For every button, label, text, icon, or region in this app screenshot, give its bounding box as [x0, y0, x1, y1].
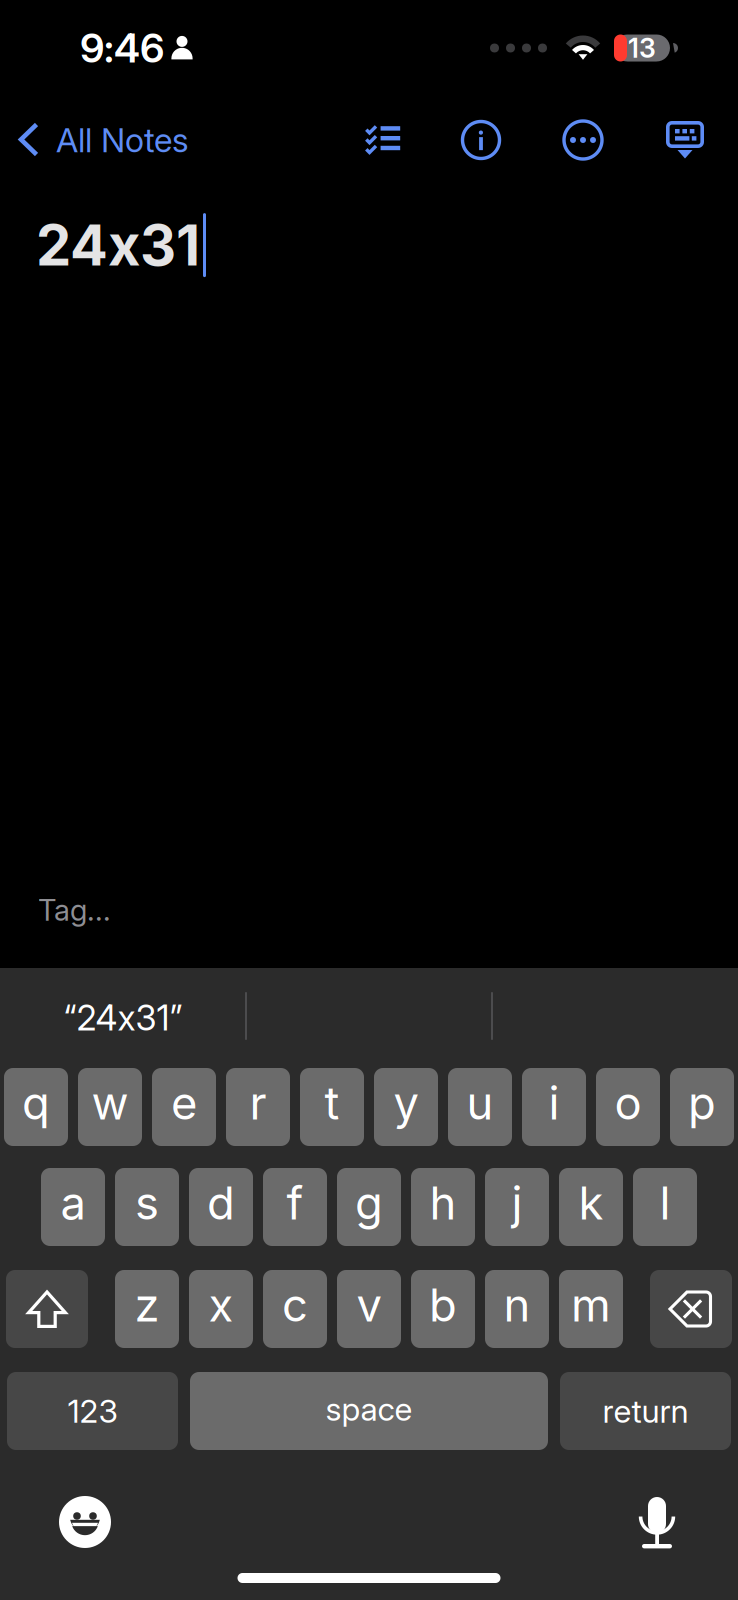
staticText: x	[208, 1278, 233, 1332]
button[interactable]: t	[300, 1068, 364, 1146]
staticText: “24x31”	[63, 997, 182, 1039]
button[interactable]: e	[152, 1068, 216, 1146]
staticText: j	[511, 1176, 522, 1230]
staticText: r	[249, 1076, 266, 1130]
button[interactable]: d	[189, 1168, 253, 1246]
button[interactable]: k	[559, 1168, 623, 1246]
button[interactable]: l	[633, 1168, 697, 1246]
button[interactable]: o	[596, 1068, 660, 1146]
staticText: t	[324, 1076, 339, 1130]
button[interactable]: a	[41, 1168, 105, 1246]
button[interactable]: p	[670, 1068, 734, 1146]
staticText: space	[325, 1390, 412, 1428]
button[interactable]: Note Info	[452, 97, 510, 183]
staticText: 123	[67, 1392, 117, 1430]
staticText: Tag...	[38, 892, 111, 928]
button[interactable]: g	[337, 1168, 401, 1246]
button[interactable]: All Notes	[0, 97, 201, 183]
staticText: a	[60, 1176, 85, 1230]
staticText: All Notes	[56, 120, 189, 160]
staticText: n	[503, 1278, 530, 1332]
button[interactable]: Checklist	[352, 97, 414, 183]
button[interactable]: Emoji	[54, 1450, 116, 1548]
staticText: f	[286, 1176, 303, 1230]
staticText: b	[429, 1278, 457, 1332]
staticText: l	[659, 1176, 670, 1230]
button[interactable]: Shift	[6, 1270, 88, 1348]
staticText: m	[571, 1278, 611, 1332]
staticText: s	[135, 1176, 159, 1230]
button[interactable]: w	[78, 1068, 142, 1146]
staticText: 9:46	[80, 24, 164, 72]
button[interactable]: i	[522, 1068, 586, 1146]
button[interactable]: q	[4, 1068, 68, 1146]
button[interactable]: u	[448, 1068, 512, 1146]
button[interactable]: Dictation	[626, 1450, 688, 1548]
staticText: y	[393, 1076, 418, 1130]
button[interactable]: c	[263, 1270, 327, 1348]
staticText: u	[466, 1076, 493, 1130]
staticText: h	[429, 1176, 456, 1230]
button[interactable]: z	[115, 1270, 179, 1348]
staticText: c	[282, 1278, 308, 1332]
staticText: w	[91, 1076, 128, 1130]
button[interactable]: v	[337, 1270, 401, 1348]
button[interactable]: space	[190, 1372, 548, 1450]
staticText: 24x31	[36, 211, 200, 279]
staticText: v	[356, 1278, 381, 1332]
staticText: return	[602, 1392, 688, 1430]
button[interactable]: m	[559, 1270, 623, 1348]
button[interactable]: n	[485, 1270, 549, 1348]
button[interactable]: Hide Keyboard	[656, 97, 714, 183]
button[interactable]: 123	[7, 1372, 178, 1450]
staticText: 13	[628, 32, 656, 64]
button[interactable]: j	[485, 1168, 549, 1246]
button[interactable]: More	[554, 97, 612, 183]
staticText: p	[688, 1076, 716, 1130]
staticText: i	[548, 1076, 559, 1130]
button[interactable]: “24x31”	[0, 968, 246, 1042]
button[interactable]: y	[374, 1068, 438, 1146]
staticText: k	[578, 1176, 603, 1230]
button[interactable]: f	[263, 1168, 327, 1246]
button[interactable]: return	[560, 1372, 731, 1450]
staticText: z	[134, 1278, 159, 1332]
button[interactable]: b	[411, 1270, 475, 1348]
staticText: q	[22, 1076, 50, 1130]
button[interactable]: h	[411, 1168, 475, 1246]
button[interactable]: Delete	[650, 1270, 732, 1348]
staticText: d	[207, 1176, 235, 1230]
button[interactable]: x	[189, 1270, 253, 1348]
button[interactable]: s	[115, 1168, 179, 1246]
staticText: g	[355, 1176, 383, 1230]
button[interactable]: r	[226, 1068, 290, 1146]
staticText: o	[614, 1076, 641, 1130]
staticText: e	[171, 1076, 197, 1130]
